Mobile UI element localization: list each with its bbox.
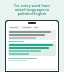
staticText: For every word from mixed languages to p… [4, 3, 60, 17]
button[interactable] [8, 26, 20, 29]
button[interactable]: Copy translation [53, 41, 56, 42]
button[interactable] [8, 43, 56, 56]
button[interactable] [21, 26, 32, 29]
button[interactable] [8, 30, 56, 40]
button[interactable] [33, 26, 39, 29]
